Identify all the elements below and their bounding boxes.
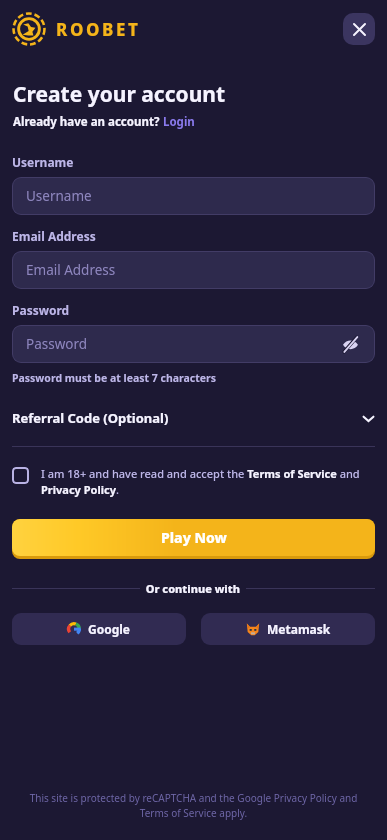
button[interactable]: Close — [343, 13, 375, 45]
staticText: Google — [88, 621, 131, 637]
staticText: Password — [26, 335, 88, 353]
button[interactable]: ROOBET — [12, 12, 141, 46]
staticText: I am 18+ and have read and accept the Te… — [41, 466, 375, 497]
staticText: Play Now — [161, 528, 227, 547]
staticText: Referral Code (Optional) — [12, 409, 169, 427]
button[interactable]: Metamask — [201, 613, 375, 645]
staticText: Username — [26, 187, 92, 205]
button[interactable]: Show password — [339, 333, 361, 355]
button[interactable]: Google — [12, 613, 186, 645]
staticText: Username — [12, 154, 74, 170]
staticText: Email Address — [12, 228, 96, 244]
button[interactable]: Login — [163, 114, 195, 130]
staticText: This site is protected by reCAPTCHA and … — [20, 791, 367, 820]
staticText: Login — [163, 114, 195, 130]
button[interactable]: Play Now — [12, 519, 375, 559]
button[interactable]: Email Address — [12, 251, 375, 289]
staticText: Or continue with — [140, 581, 246, 596]
staticText: Already have an account? — [13, 114, 163, 130]
staticText: Metamask — [267, 621, 331, 637]
button[interactable]: Password — [12, 325, 375, 363]
button[interactable]: Referral Code (Optional) — [12, 405, 375, 431]
staticText: Password — [12, 302, 70, 318]
staticText: Email Address — [26, 261, 116, 279]
button[interactable]: I am 18+ and have read and accept the Te… — [12, 466, 375, 497]
staticText: Password must be at least 7 characters — [12, 371, 217, 385]
staticText: Create your account — [13, 80, 226, 109]
staticText: ROOBET — [56, 18, 141, 41]
button[interactable]: Username — [12, 177, 375, 215]
